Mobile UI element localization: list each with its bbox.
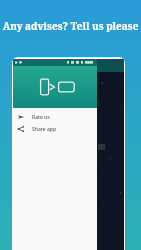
button[interactable]: Rate us — [13, 111, 97, 123]
other: Rate us — [17, 113, 25, 121]
button[interactable]: Share app — [13, 123, 97, 135]
staticText: Share app — [32, 126, 56, 133]
other: Share app — [17, 125, 25, 133]
staticText: Rate us — [32, 114, 50, 121]
staticText: Any advises? Tell us please — [0, 19, 141, 33]
